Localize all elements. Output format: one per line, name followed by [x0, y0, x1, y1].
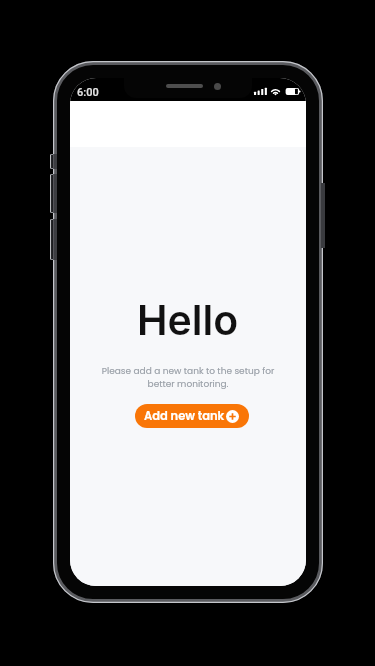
staticText: Add new tank — [144, 408, 225, 424]
staticText: Please add a new tank to the setup for b… — [95, 365, 281, 390]
button[interactable]: Add new tank — [135, 404, 249, 428]
staticText: Hello — [137, 295, 239, 345]
staticText: 6:00 — [77, 86, 99, 99]
